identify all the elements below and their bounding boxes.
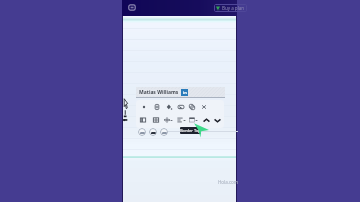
button[interactable]: Clear formatting bbox=[198, 101, 210, 113]
staticText: Buy a plan bbox=[222, 5, 245, 11]
button[interactable]: Previous bbox=[200, 114, 212, 126]
button[interactable]: Insert image bbox=[175, 101, 187, 113]
button[interactable]: Distribute bbox=[161, 114, 173, 126]
staticText: Hola.com bbox=[218, 179, 239, 185]
button[interactable]: Merge cells bbox=[137, 114, 149, 126]
staticText: in bbox=[183, 90, 187, 95]
button[interactable]: Buy a plan bbox=[214, 4, 247, 12]
button[interactable]: Collaborator bbox=[138, 128, 146, 136]
button[interactable]: Collaborator bbox=[149, 128, 157, 136]
button[interactable]: Matias Williams bbox=[136, 87, 225, 98]
button[interactable]: Paste bbox=[151, 101, 163, 113]
button[interactable]: Fill colour bbox=[163, 101, 175, 113]
button[interactable]: Text align bbox=[174, 114, 186, 126]
button[interactable]: Collaborator bbox=[160, 128, 168, 136]
staticText: Border Top bbox=[180, 128, 201, 133]
button[interactable]: Next bbox=[211, 114, 223, 126]
button[interactable]: App logo bbox=[128, 4, 136, 11]
staticText: Matias Williams bbox=[139, 89, 179, 96]
button[interactable]: Duplicate bbox=[186, 101, 198, 113]
button[interactable]: Table bbox=[150, 114, 162, 126]
button[interactable]: Effects bbox=[138, 101, 150, 113]
button[interactable]: Borders bbox=[186, 114, 198, 126]
